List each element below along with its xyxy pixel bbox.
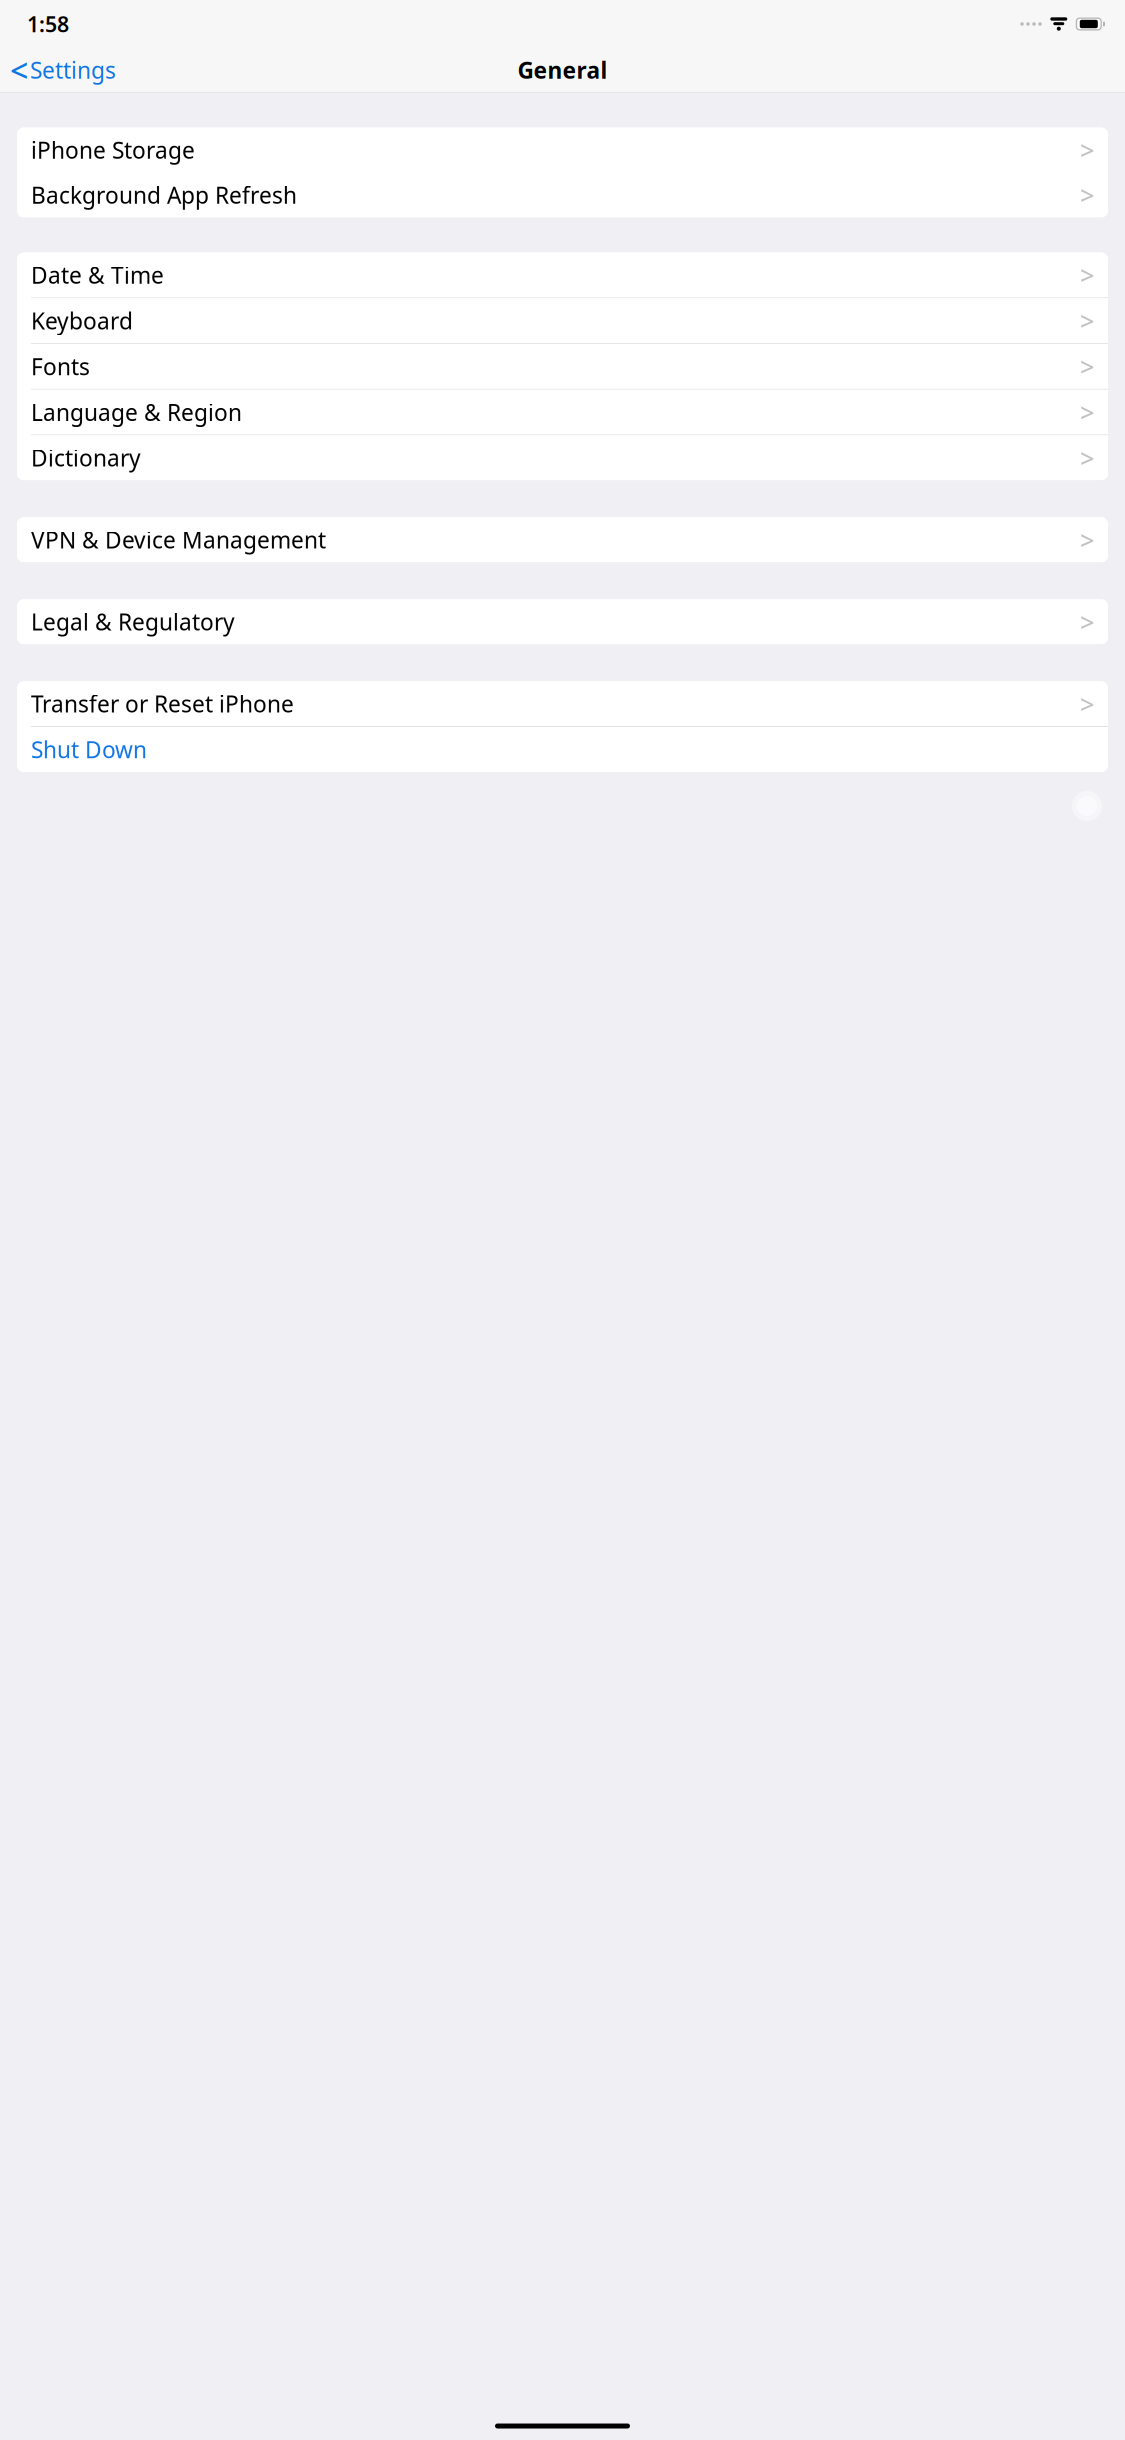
button[interactable]: Transfer or Reset iPhone	[17, 681, 1108, 726]
staticText: Keyboard	[31, 306, 133, 336]
button[interactable]: <	[6, 48, 122, 92]
staticText: Date & Time	[31, 260, 164, 290]
staticText: Dictionary	[31, 443, 141, 473]
button[interactable]: Dictionary	[17, 435, 1108, 480]
staticText: <	[10, 49, 28, 91]
staticText: >	[1080, 687, 1094, 721]
staticText: Transfer or Reset iPhone	[31, 689, 294, 719]
button[interactable]: Fonts	[17, 344, 1108, 389]
staticText: >	[1080, 258, 1094, 292]
staticText: Legal & Regulatory	[31, 607, 235, 637]
staticText: VPN & Device Management	[31, 525, 326, 555]
staticText: >	[1080, 178, 1094, 212]
staticText: iPhone Storage	[31, 135, 195, 165]
staticText: Fonts	[31, 351, 90, 381]
button[interactable]: Keyboard	[17, 298, 1108, 343]
staticText: Shut Down	[31, 734, 147, 764]
button[interactable]: iPhone Storage	[17, 127, 1108, 172]
staticText: >	[1080, 523, 1094, 557]
button[interactable]: VPN & Device Management	[17, 517, 1108, 562]
button[interactable]: Legal & Regulatory	[17, 599, 1108, 644]
staticText: 1:58	[27, 10, 69, 38]
staticText: Language & Region	[31, 397, 242, 427]
staticText: >	[1080, 605, 1094, 639]
button[interactable]: Background App Refresh	[17, 172, 1108, 217]
button[interactable]: Language & Region	[17, 390, 1108, 435]
staticText: >	[1080, 304, 1094, 337]
staticText: >	[1080, 350, 1094, 383]
staticText: Settings	[30, 55, 116, 85]
staticText: >	[1080, 395, 1094, 429]
button[interactable]: Date & Time	[17, 252, 1108, 297]
staticText: >	[1080, 441, 1094, 475]
staticText: General	[517, 55, 607, 85]
button[interactable]: Shut Down	[17, 727, 1108, 772]
staticText: Background App Refresh	[31, 180, 297, 210]
staticText: >	[1080, 133, 1094, 167]
